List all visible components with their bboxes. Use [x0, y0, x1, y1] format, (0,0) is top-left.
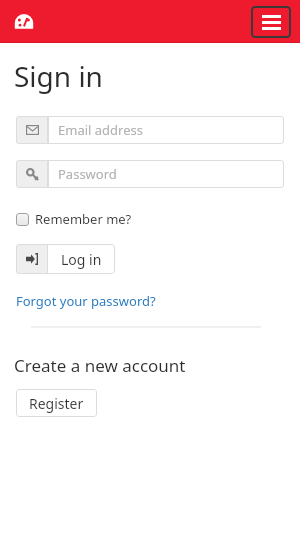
button[interactable]: Forgot your password?	[16, 292, 156, 310]
staticText: Create a new account	[14, 354, 186, 377]
button[interactable]: Home	[11, 9, 37, 35]
staticText: Forgot your password?	[16, 292, 156, 310]
staticText: Register	[29, 394, 84, 413]
button[interactable]: Email address	[16, 116, 284, 144]
staticText: Remember me?	[35, 210, 132, 228]
button[interactable]: Log in	[16, 244, 115, 274]
button[interactable]: Register	[16, 389, 97, 417]
staticText: Sign in	[14, 57, 103, 95]
button[interactable]: Password	[16, 160, 284, 188]
button[interactable]: Remember me?	[16, 210, 132, 228]
staticText: Log in	[61, 250, 102, 269]
button[interactable]: Toggle navigation menu	[251, 6, 291, 38]
staticText: Email address	[58, 121, 143, 139]
staticText: Password	[58, 165, 117, 183]
